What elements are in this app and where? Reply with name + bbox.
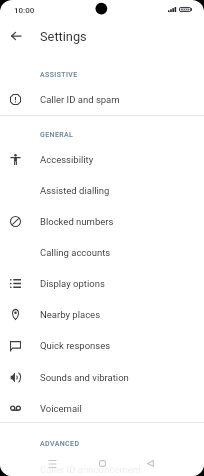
button[interactable]: Accessibility [0,144,204,175]
button[interactable]: Voicemail [0,393,204,424]
button[interactable]: Caller ID announcement [0,454,204,476]
staticText: Quick responses [40,340,111,351]
button[interactable]: Assisted dialling [0,175,204,206]
staticText: Accessibility [40,154,94,165]
staticText: Sounds and vibration [40,372,129,383]
staticText: Blocked numbers [40,216,114,227]
button[interactable]: Calling accounts [0,237,204,268]
staticText: Caller ID and spam [40,94,120,105]
button[interactable]: Recent apps [40,451,65,476]
staticText: Settings [40,29,87,44]
button[interactable]: Home [89,450,115,476]
staticText: Calling accounts [40,247,111,258]
staticText: GENERAL [40,131,74,139]
button[interactable]: Sounds and vibration [0,362,204,393]
staticText: Display options [40,278,105,289]
staticText: ADVANCED [40,440,80,448]
button[interactable]: Blocked numbers [0,206,204,237]
button[interactable]: Display options [0,268,204,299]
staticText: 10:00 [14,6,35,15]
staticText: Assisted dialling [40,185,110,196]
staticText: ASSISTIVE [40,71,78,79]
button[interactable]: Back [137,450,163,476]
button[interactable]: Back [3,23,29,49]
button[interactable]: Nearby places [0,299,204,330]
button[interactable]: Caller ID and spam [0,84,204,115]
button[interactable]: Quick responses [0,330,204,361]
staticText: Nearby places [40,309,101,320]
staticText: Caller ID announcement [40,464,142,475]
staticText: Voicemail [40,403,82,414]
